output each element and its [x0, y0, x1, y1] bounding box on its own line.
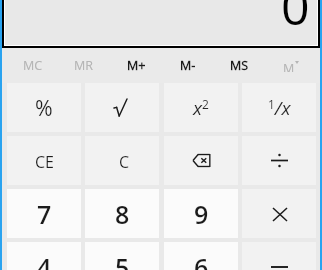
staticText: MC	[23, 57, 43, 74]
staticText: 7	[37, 197, 52, 231]
staticText: 9	[194, 197, 209, 231]
staticText: C	[119, 151, 130, 173]
staticText: CE	[35, 151, 54, 173]
staticText: 4	[37, 250, 52, 270]
button[interactable]: Four	[7, 242, 81, 270]
button[interactable]: Backspace	[164, 136, 238, 185]
staticText: 5	[115, 250, 130, 270]
button[interactable]: Divide	[242, 136, 316, 185]
button[interactable]: Nine	[164, 189, 238, 238]
button[interactable]: MR	[58, 48, 110, 83]
staticText: 1/x	[268, 95, 291, 121]
button[interactable]: M	[265, 48, 317, 83]
button[interactable]: M+	[110, 48, 162, 83]
button[interactable]: MS	[213, 48, 265, 83]
button[interactable]: Clear	[85, 136, 159, 185]
button[interactable]: Square root	[85, 83, 159, 132]
staticText: %	[35, 93, 53, 122]
button[interactable]: Seven	[7, 189, 81, 238]
button[interactable]: Minus	[242, 242, 316, 270]
staticText: 0	[281, 0, 310, 40]
button[interactable]: MC	[7, 48, 59, 83]
button[interactable]: Eight	[85, 189, 159, 238]
staticText: M	[283, 60, 295, 72]
staticText: M-	[180, 57, 196, 74]
staticText: 8	[115, 197, 130, 231]
staticText: x2	[193, 95, 209, 121]
button[interactable]: M-	[162, 48, 214, 83]
staticText: MR	[74, 57, 94, 74]
button[interactable]: Percent	[7, 83, 81, 132]
button[interactable]: X squared	[164, 83, 238, 132]
staticText: 6	[194, 250, 209, 270]
button[interactable]: Multiply	[242, 189, 316, 238]
button[interactable]: Reciprocal	[242, 83, 316, 132]
button[interactable]: Five	[85, 242, 159, 270]
staticText: M+	[127, 57, 146, 74]
button[interactable]: Six	[164, 242, 238, 270]
staticText: MS	[230, 57, 249, 74]
button[interactable]: Clear entry	[7, 136, 81, 185]
